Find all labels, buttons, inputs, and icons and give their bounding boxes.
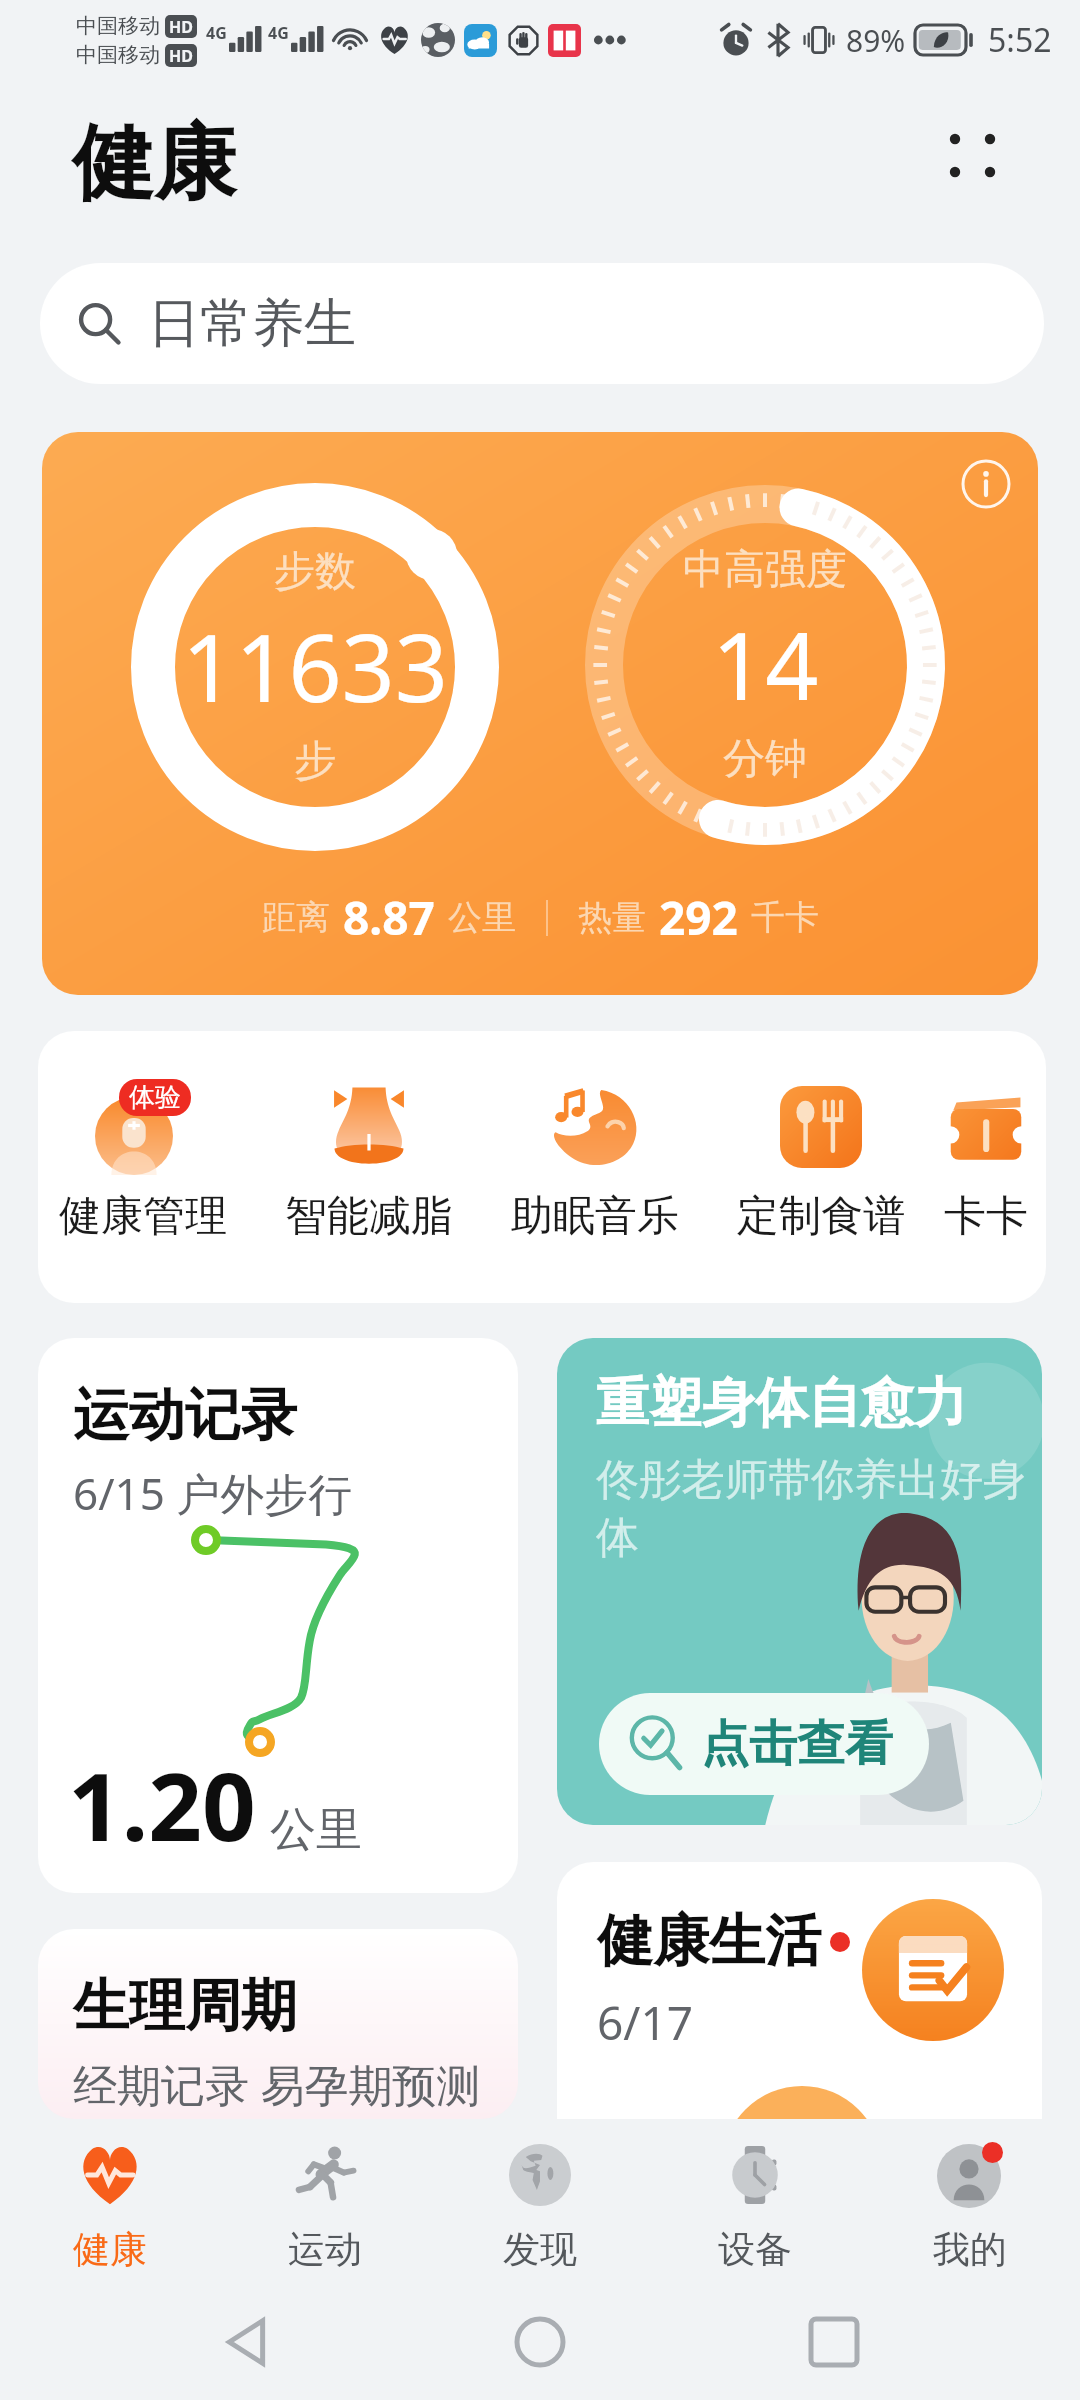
button[interactable]: 健康 bbox=[5, 2142, 215, 2282]
staticText: 5:52 bbox=[988, 18, 1052, 62]
staticText: 定制食谱 bbox=[737, 1190, 905, 1243]
staticText: 健康 bbox=[72, 112, 236, 215]
staticText: 体验 bbox=[129, 1081, 181, 1114]
staticText: 设备 bbox=[718, 2226, 792, 2273]
staticText: 中国移动 bbox=[76, 13, 160, 39]
staticText: 分钟 bbox=[723, 733, 807, 786]
button[interactable]: 助眠音乐 bbox=[482, 1079, 708, 1243]
staticText: 89% bbox=[846, 20, 906, 61]
staticText: 步数 bbox=[274, 546, 356, 598]
button[interactable]: Info bbox=[956, 454, 1016, 514]
button[interactable]: 设备 bbox=[650, 2142, 860, 2282]
button[interactable]: 生理周期 bbox=[38, 1929, 518, 2119]
button[interactable]: 卡卡 bbox=[934, 1079, 1038, 1243]
staticText: 千卡 bbox=[751, 896, 819, 939]
staticText: 公里 bbox=[270, 1801, 362, 1859]
staticText: 健康管理 bbox=[59, 1190, 227, 1243]
staticText: 中高强度 bbox=[683, 544, 847, 596]
button[interactable]: 发现 bbox=[435, 2142, 645, 2282]
staticText: 日常养生 bbox=[148, 291, 356, 357]
staticText: 经期记录 易孕期预测 bbox=[73, 2054, 481, 2114]
button[interactable]: 运动 bbox=[220, 2142, 430, 2282]
staticText: 公里 bbox=[448, 896, 516, 939]
staticText: 生理周期 bbox=[73, 1971, 297, 2042]
staticText: 助眠音乐 bbox=[511, 1190, 679, 1243]
button[interactable]: Home bbox=[492, 2294, 588, 2390]
button[interactable]: Info bbox=[42, 432, 1038, 995]
staticText: 我的 bbox=[933, 2226, 1007, 2273]
button[interactable]: 健康生活 bbox=[557, 1862, 1042, 2119]
staticText: 292 bbox=[659, 886, 738, 949]
staticText: 4G bbox=[268, 22, 289, 44]
button[interactable]: 智能减脂 bbox=[256, 1079, 482, 1243]
staticText: 步 bbox=[294, 735, 336, 788]
button[interactable]: Back bbox=[198, 2294, 294, 2390]
staticText: 1.20 bbox=[68, 1741, 256, 1869]
staticText: 8.87 bbox=[343, 886, 435, 949]
staticText: 14 bbox=[712, 601, 819, 728]
button[interactable]: 日常养生 bbox=[40, 263, 1044, 384]
staticText: 运动 bbox=[288, 2226, 362, 2273]
staticText: 6/15 户外步行 bbox=[73, 1463, 353, 1523]
button[interactable]: More options bbox=[924, 107, 1020, 203]
staticText: 卡卡 bbox=[944, 1190, 1028, 1243]
staticText: 4G bbox=[206, 22, 227, 44]
staticText: HD bbox=[169, 16, 193, 38]
button[interactable]: 定制食谱 bbox=[708, 1079, 934, 1243]
button[interactable]: 重塑身体自愈力 bbox=[557, 1338, 1042, 1825]
staticText: 智能减脂 bbox=[285, 1190, 453, 1243]
staticText: 重塑身体自愈力 bbox=[596, 1370, 967, 1437]
button[interactable]: 点击查看 bbox=[599, 1693, 929, 1795]
staticText: 距离 bbox=[262, 896, 330, 939]
staticText: 6/17 bbox=[597, 1991, 694, 2054]
button[interactable]: 体验 bbox=[38, 1079, 256, 1243]
staticText: HD bbox=[169, 45, 193, 67]
staticText: 发现 bbox=[503, 2226, 577, 2273]
staticText: 运动记录 bbox=[73, 1380, 297, 1451]
staticText: 点击查看 bbox=[701, 1714, 893, 1774]
staticText: 健康 bbox=[73, 2226, 147, 2273]
button[interactable]: 运动记录 bbox=[38, 1338, 518, 1893]
staticText: 热量 bbox=[578, 896, 646, 939]
staticText: 健康生活 bbox=[597, 1906, 821, 1977]
button[interactable]: Recents bbox=[786, 2294, 882, 2390]
button[interactable]: 我的 bbox=[865, 2142, 1075, 2282]
staticText: 11633 bbox=[182, 603, 448, 730]
staticText: 佟彤老师带你养出好身体 bbox=[596, 1453, 1036, 1564]
staticText: 中国移动 bbox=[76, 42, 160, 68]
